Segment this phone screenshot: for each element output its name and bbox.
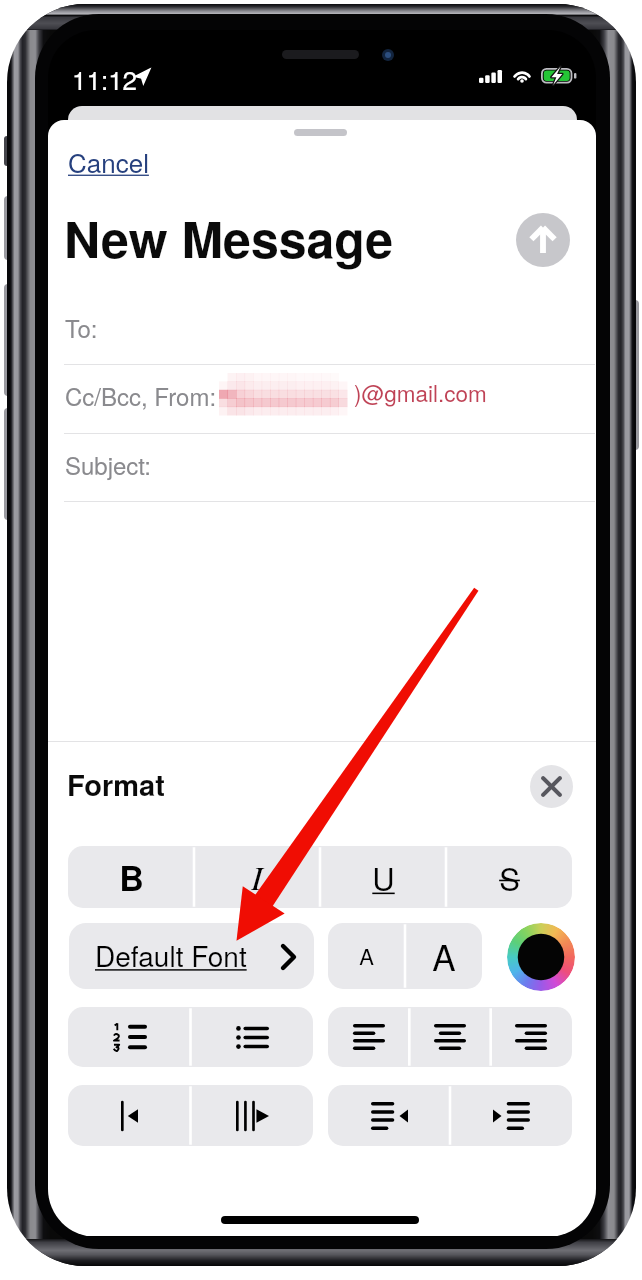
button[interactable]: Send: [516, 213, 570, 267]
staticText: Cc/Bcc, From:: [65, 378, 217, 412]
button[interactable]: format option: [450, 1085, 572, 1146]
button[interactable]: format option: [409, 1007, 490, 1067]
staticText: I: [251, 854, 263, 900]
button[interactable]: format option: [191, 1085, 313, 1146]
button[interactable]: format option: [405, 923, 482, 989]
button[interactable]: format option: [68, 1085, 191, 1146]
button[interactable]: format option: [328, 1085, 450, 1146]
staticText: S: [499, 855, 520, 899]
staticText: Cancel: [68, 143, 149, 180]
button[interactable]: format option: [320, 846, 446, 908]
button[interactable]: format option: [191, 1007, 313, 1067]
button[interactable]: format option: [490, 1007, 571, 1067]
button[interactable]: [69, 923, 314, 989]
button[interactable]: format option: [68, 846, 194, 908]
button[interactable]: Text colour: [507, 923, 575, 991]
staticText: New Message: [64, 202, 394, 274]
staticText: Format: [67, 763, 165, 805]
button[interactable]: format option: [68, 1007, 191, 1067]
staticText: A: [359, 940, 374, 972]
staticText: )@gmail.com: [354, 376, 487, 408]
button[interactable]: format option: [328, 923, 405, 989]
staticText: To:: [65, 310, 98, 344]
button[interactable]: format option: [328, 1007, 409, 1067]
staticText: Default Font: [95, 935, 247, 975]
staticText: Subject:: [65, 447, 151, 481]
button[interactable]: format option: [194, 846, 320, 908]
button[interactable]: Close format options: [530, 765, 573, 808]
button[interactable]: format option: [446, 846, 572, 908]
staticText: U: [372, 855, 395, 899]
staticText: B: [119, 853, 144, 902]
staticText: 11:12: [72, 60, 138, 97]
button[interactable]: Cancel: [60, 135, 157, 188]
staticText: A: [432, 931, 456, 981]
